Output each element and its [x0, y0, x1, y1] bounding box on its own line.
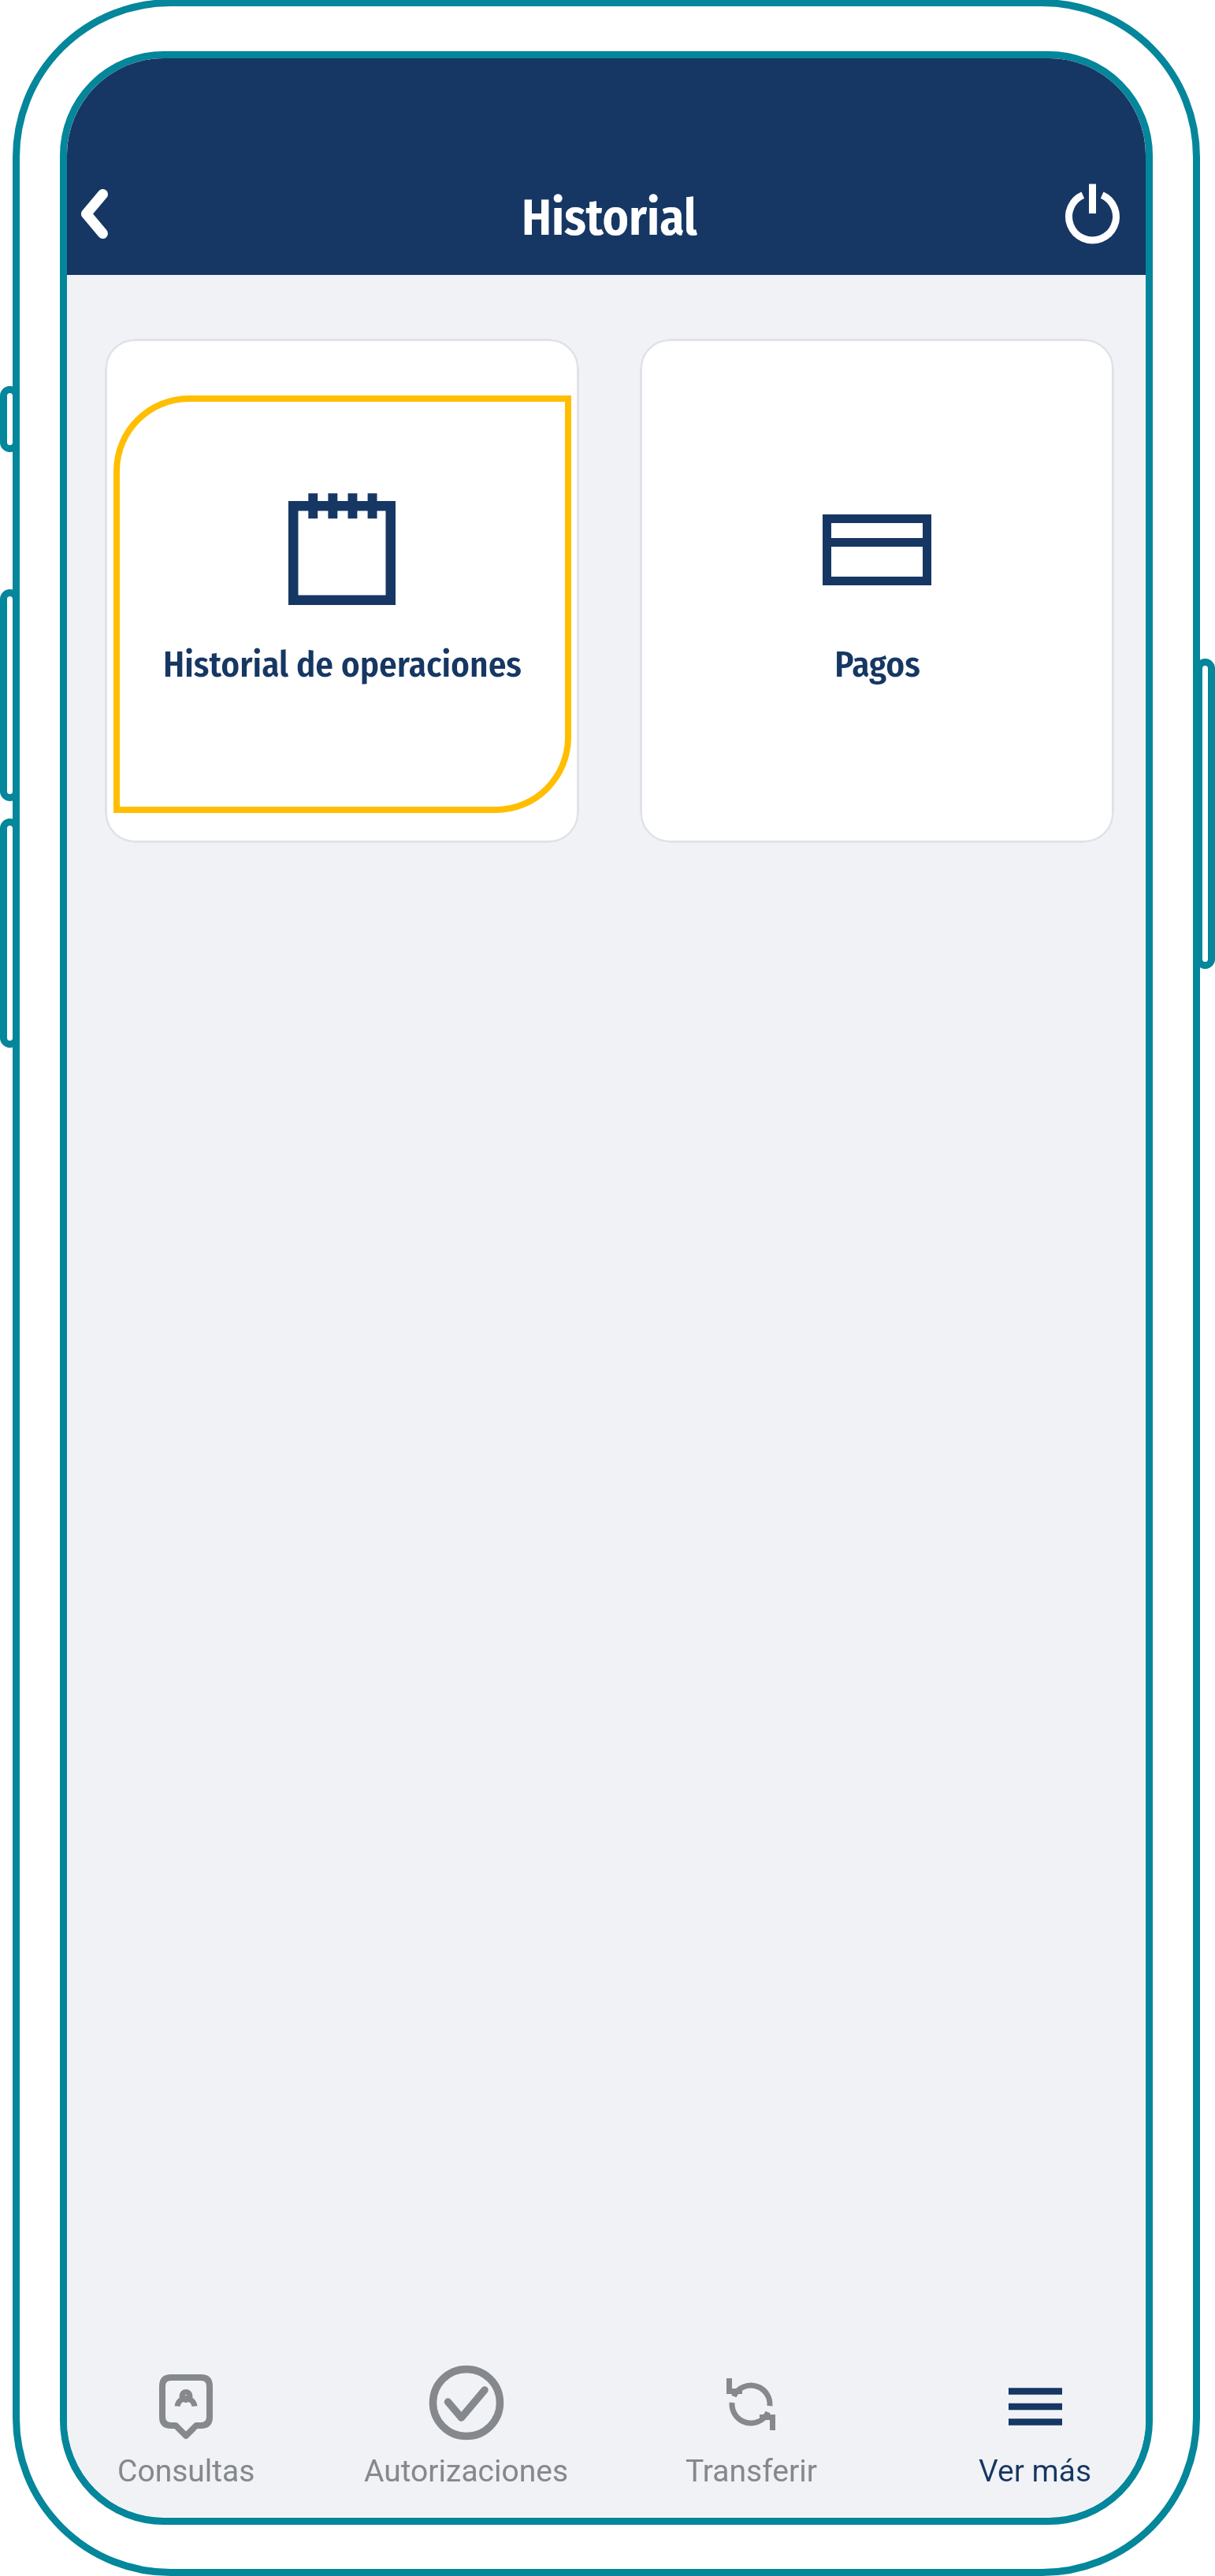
staticText: Pagos	[834, 644, 920, 686]
staticText: Consultas	[117, 2453, 255, 2489]
staticText: Transferir	[686, 2453, 817, 2489]
button[interactable]: Consultas	[67, 2363, 316, 2500]
button[interactable]: Ver más	[905, 2363, 1146, 2500]
button[interactable]: Transferir	[621, 2363, 881, 2500]
button[interactable]: Power off	[1049, 173, 1135, 260]
staticText: Historial de operaciones	[163, 644, 522, 686]
button[interactable]: Historial de operaciones	[105, 339, 579, 843]
staticText: Ver más	[979, 2453, 1092, 2489]
staticText: Historial	[522, 188, 697, 248]
button[interactable]: Pagos	[640, 339, 1114, 843]
staticText: Autorizaciones	[364, 2453, 569, 2489]
button[interactable]: Autorizaciones	[336, 2363, 596, 2500]
button[interactable]: Back	[69, 173, 136, 254]
